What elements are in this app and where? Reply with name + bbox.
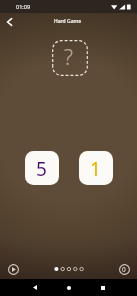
staticText: 01:09 [16,3,31,10]
button[interactable]: Home [60,279,77,296]
button[interactable]: Back [26,279,43,296]
button[interactable]: 1 [79,151,113,185]
staticText: 5 [36,156,47,182]
staticText: 0 [122,265,126,274]
button[interactable]: Recents [94,279,111,296]
button[interactable]: Target slot [52,40,88,76]
button[interactable]: Score [114,259,134,279]
button[interactable]: Play [3,259,23,279]
button[interactable]: Back [0,13,19,31]
staticText: ? [64,43,73,72]
staticText: Hard Game [54,18,82,25]
button[interactable]: 5 [25,151,59,185]
staticText: 1 [90,156,101,182]
